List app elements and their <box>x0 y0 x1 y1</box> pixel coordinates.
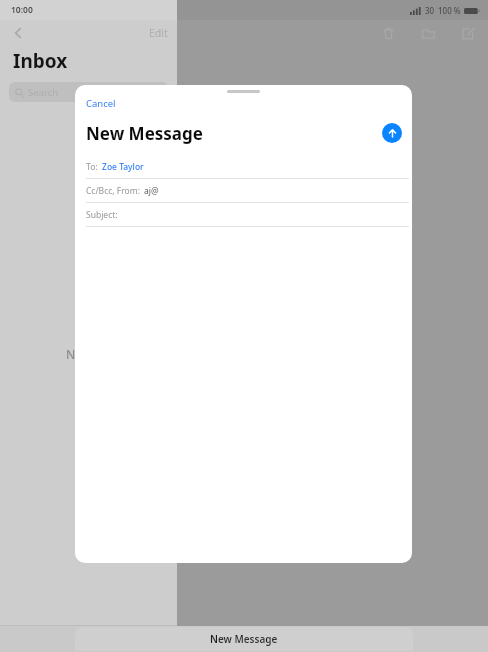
button[interactable]: Subject: <box>75 203 412 227</box>
button[interactable]: Send <box>382 123 402 143</box>
staticText: Edit <box>149 26 168 40</box>
staticText: Cc/Bcc, From: <box>86 185 140 197</box>
staticText: Subject: <box>86 209 118 221</box>
staticText: Zoe Taylor <box>102 161 144 173</box>
button[interactable]: Compose <box>458 23 478 43</box>
staticText: New Message <box>86 122 203 145</box>
button[interactable]: Cancel <box>86 96 116 111</box>
button[interactable]: Move to folder <box>418 23 438 43</box>
staticText: 100 % <box>438 5 461 16</box>
button[interactable]: To: <box>75 155 412 179</box>
staticText: aj@ <box>144 185 159 197</box>
staticText: 30 <box>425 5 435 16</box>
button[interactable]: Search <box>9 82 168 102</box>
button[interactable]: Delete <box>378 23 398 43</box>
staticText: To: <box>86 161 98 173</box>
staticText: 10:00 <box>11 4 33 16</box>
button[interactable]: Back <box>6 21 30 45</box>
button[interactable]: New Message <box>75 627 413 651</box>
staticText: Search <box>28 86 59 99</box>
staticText: No Mail <box>66 346 111 362</box>
staticText: New Message <box>210 632 278 646</box>
staticText: Inbox <box>13 48 68 74</box>
button[interactable]: Cc/Bcc, From: <box>75 179 412 203</box>
staticText: Cancel <box>86 97 116 110</box>
button[interactable]: Edit <box>149 26 168 40</box>
